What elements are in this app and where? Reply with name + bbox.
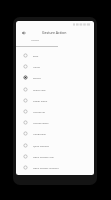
staticText: Back [33, 54, 39, 57]
staticText: Open Google Now [33, 155, 54, 158]
staticText: Volume up [33, 110, 46, 113]
button[interactable]: Notification [16, 128, 94, 139]
staticText: Notification [33, 132, 47, 135]
button[interactable]: Quick settings [16, 140, 94, 151]
staticText: Actions [31, 39, 39, 42]
staticText: Volume down [33, 121, 49, 124]
button[interactable]: Volume down [16, 117, 94, 128]
button[interactable]: Power menu [16, 95, 94, 106]
button[interactable]: Open Google Now [16, 151, 94, 162]
button[interactable]: Volume up [16, 106, 94, 117]
staticText: Home [33, 65, 40, 68]
staticText: Open Google Assistant [33, 166, 59, 169]
button[interactable]: Search app [16, 84, 94, 95]
button[interactable]: Record [16, 72, 94, 83]
staticText: Gesture Action [42, 30, 67, 35]
staticText: Record [33, 76, 41, 79]
button[interactable]: Home [16, 61, 94, 72]
button[interactable]: Back [19, 28, 28, 37]
button[interactable]: Open Google Assistant [16, 162, 94, 173]
staticText: Power menu [33, 99, 48, 102]
staticText: Search app [33, 88, 46, 91]
staticText: Quick settings [33, 144, 49, 147]
button[interactable]: Back [16, 50, 94, 61]
